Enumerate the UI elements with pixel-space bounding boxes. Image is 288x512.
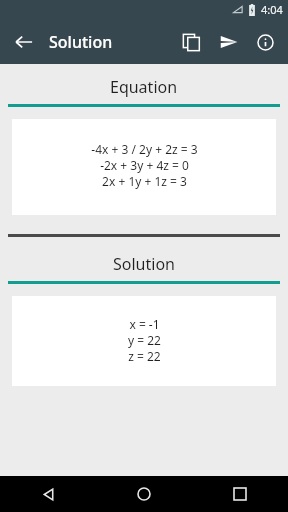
button[interactable]: -4x + 3 / 2y + 2z = 3 — [12, 119, 276, 215]
staticText: Solution — [113, 253, 175, 275]
staticText: 4:04 — [261, 2, 283, 17]
staticText: z = 22 — [128, 348, 161, 364]
button[interactable]: Recent apps — [192, 476, 288, 512]
button[interactable]: Home — [96, 476, 192, 512]
button[interactable]: Send — [212, 25, 246, 59]
button[interactable]: Back — [8, 26, 40, 58]
staticText: -4x + 3 / 2y + 2z = 3 — [91, 141, 198, 157]
staticText: x = -1 — [129, 316, 160, 332]
staticText: y = 22 — [128, 332, 161, 348]
button[interactable]: Info — [248, 25, 282, 59]
button[interactable]: x = -1 — [12, 296, 276, 386]
staticText: 2x + 1y + 1z = 3 — [102, 173, 187, 189]
staticText: Solution — [49, 31, 113, 53]
staticText: -2x + 3y + 4z = 0 — [100, 157, 189, 173]
staticText: Equation — [110, 76, 178, 98]
button[interactable]: Copy — [174, 25, 208, 59]
button[interactable]: Back — [0, 476, 96, 512]
